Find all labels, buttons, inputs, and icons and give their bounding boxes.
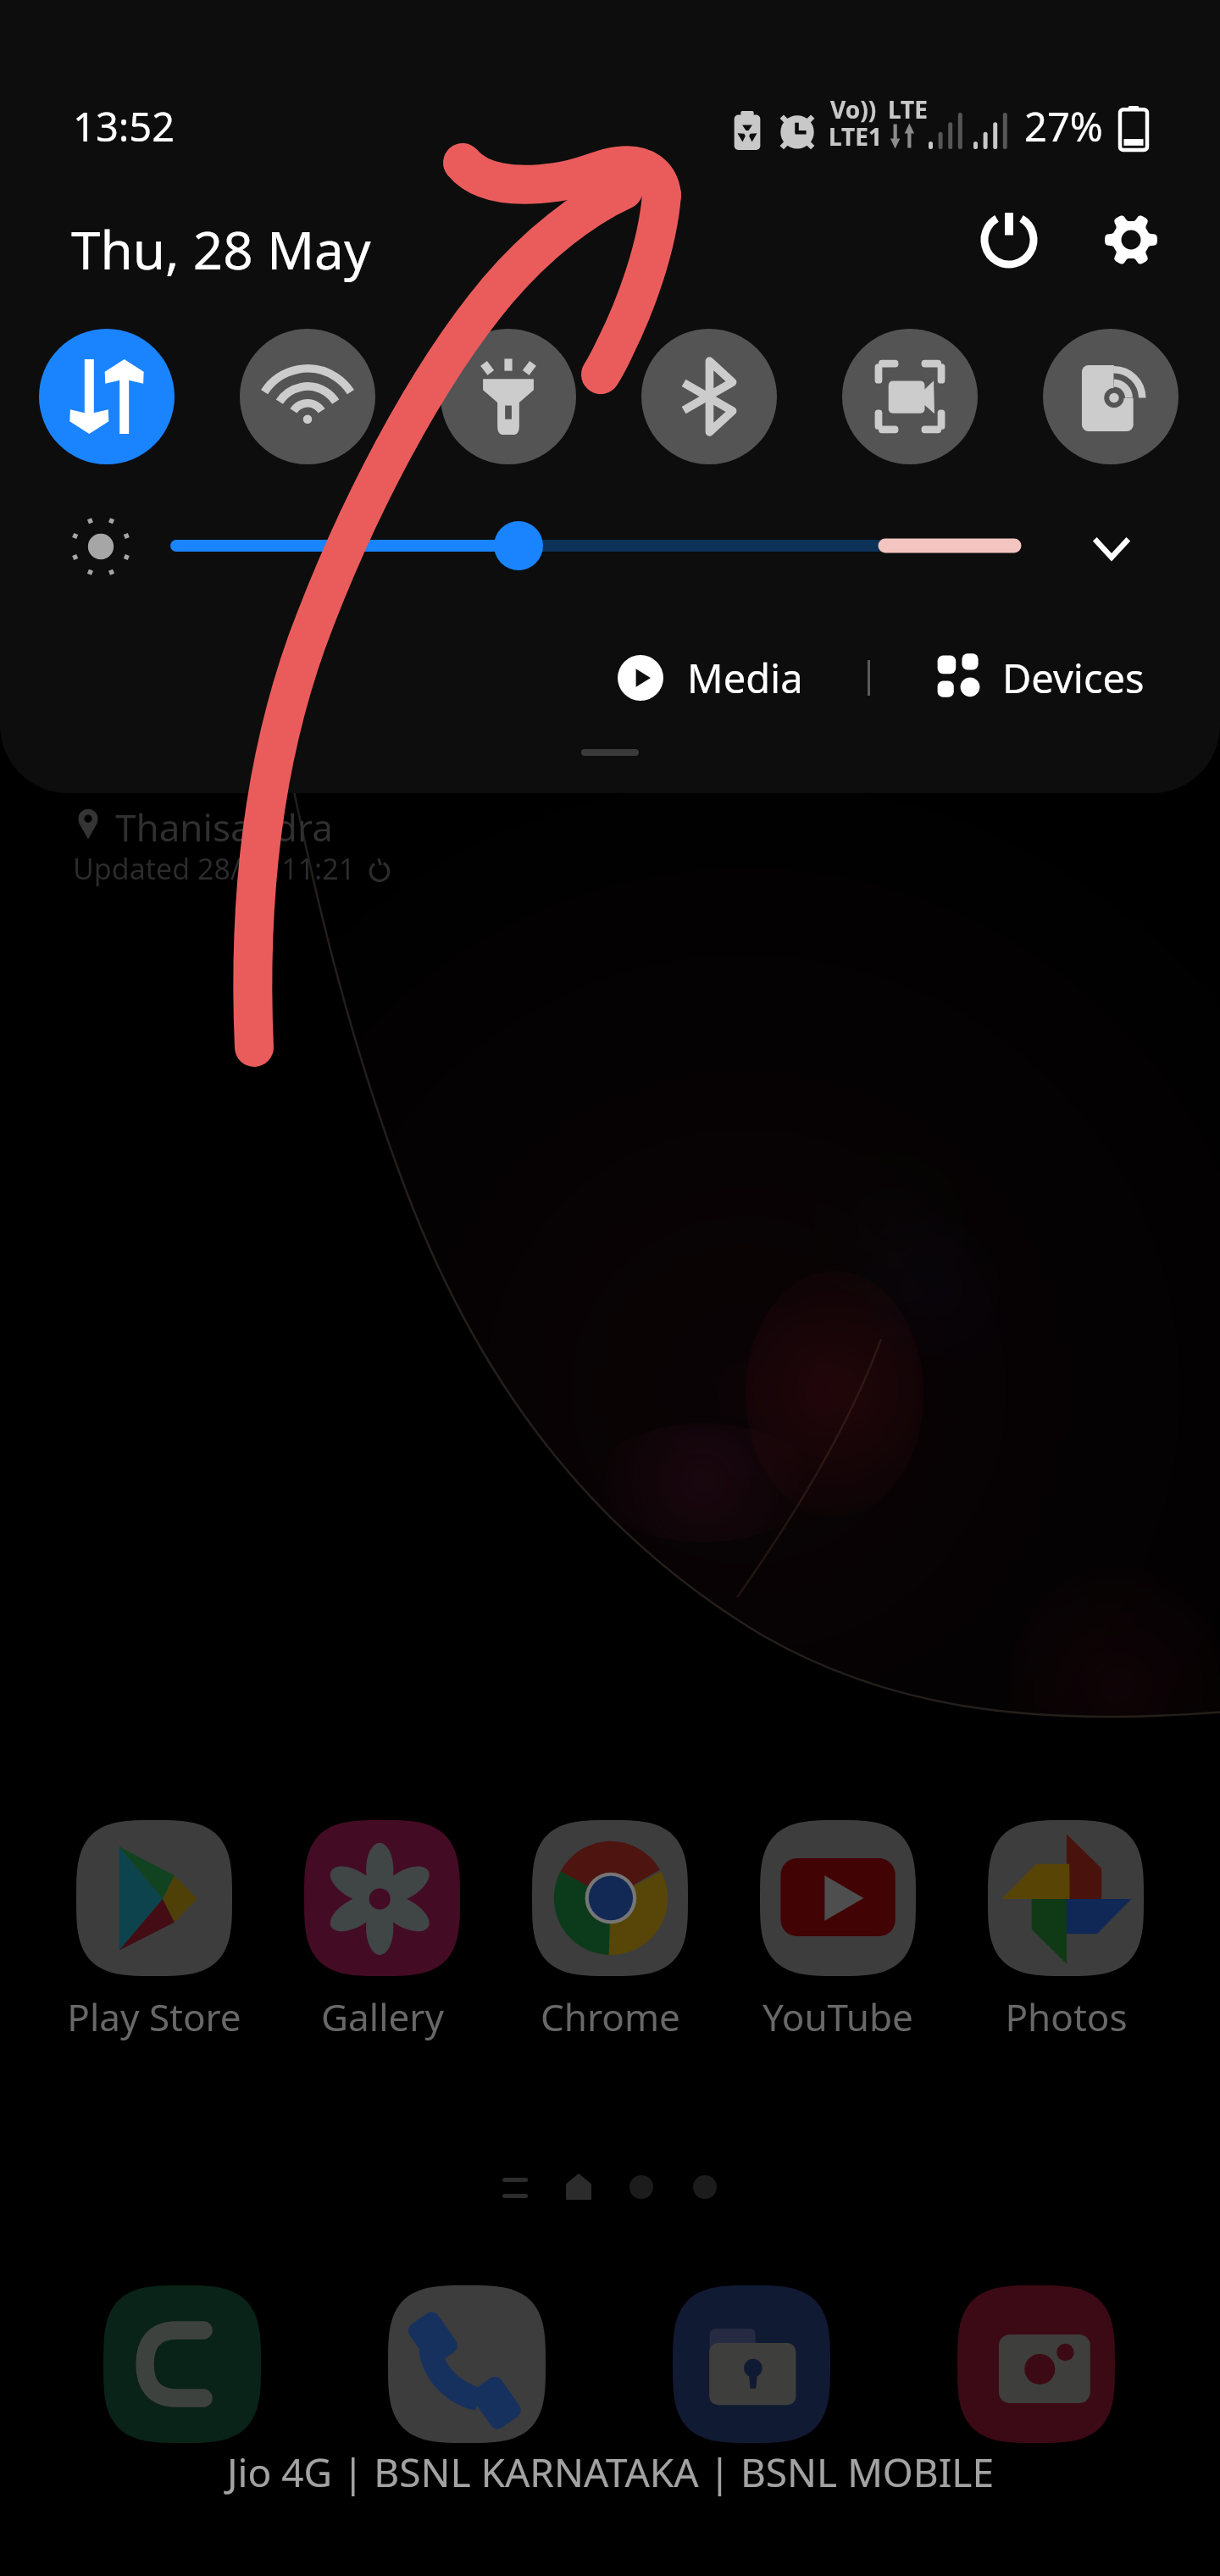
staticText: Updated 28/05 11:21 bbox=[73, 849, 356, 888]
staticText: LTE1 bbox=[829, 120, 882, 153]
button[interactable]: Power bbox=[958, 191, 1060, 289]
button[interactable]: Camera bbox=[957, 2285, 1115, 2443]
staticText: 27% bbox=[1024, 99, 1103, 153]
staticText: YouTube bbox=[762, 1991, 913, 2042]
button[interactable]: Wi-Fi bbox=[240, 329, 375, 464]
button[interactable]: Thu, 28 May bbox=[71, 214, 371, 285]
staticText: Vo)) bbox=[830, 93, 877, 125]
button[interactable]: Play Store bbox=[41, 1820, 268, 2042]
staticText: Devices bbox=[1002, 651, 1145, 705]
button[interactable]: Apps page bbox=[502, 2174, 528, 2200]
button[interactable]: Flashlight bbox=[441, 329, 576, 464]
button[interactable]: Home page bbox=[566, 2173, 591, 2200]
button[interactable]: Brightness bbox=[169, 524, 1021, 568]
button[interactable]: Phone bbox=[388, 2285, 546, 2443]
staticText: LTE bbox=[888, 93, 928, 125]
button[interactable]: Weather widget bbox=[71, 800, 427, 902]
button[interactable]: Photos bbox=[952, 1820, 1179, 2042]
button[interactable]: Bluetooth bbox=[641, 329, 777, 464]
button[interactable]: Expand bbox=[1078, 514, 1145, 582]
button[interactable]: Gallery bbox=[269, 1820, 496, 2042]
button[interactable]: Smart View bbox=[1043, 329, 1178, 464]
button[interactable]: YouTube bbox=[724, 1820, 951, 2042]
button[interactable]: Screen recorder bbox=[842, 329, 978, 464]
button[interactable]: Mobile data bbox=[39, 329, 175, 464]
button[interactable]: Secure Folder bbox=[673, 2285, 830, 2443]
button[interactable]: Contacts bbox=[103, 2285, 261, 2443]
staticText: Thanisandra bbox=[115, 802, 333, 852]
staticText: Photos bbox=[1005, 1991, 1128, 2042]
button[interactable]: Devices bbox=[934, 651, 1145, 705]
button[interactable]: Settings bbox=[1080, 191, 1182, 289]
staticText: Gallery bbox=[321, 1991, 444, 2042]
button[interactable]: Media bbox=[618, 651, 803, 705]
staticText: Media bbox=[687, 651, 803, 705]
staticText: 13:52 bbox=[73, 99, 175, 153]
staticText: Chrome bbox=[541, 1991, 680, 2042]
button[interactable]: Chrome bbox=[496, 1820, 724, 2042]
staticText: Play Store bbox=[67, 1991, 241, 2042]
staticText: Jio 4G | BSNL KARNATAKA | BSNL MOBILE bbox=[227, 2446, 994, 2499]
